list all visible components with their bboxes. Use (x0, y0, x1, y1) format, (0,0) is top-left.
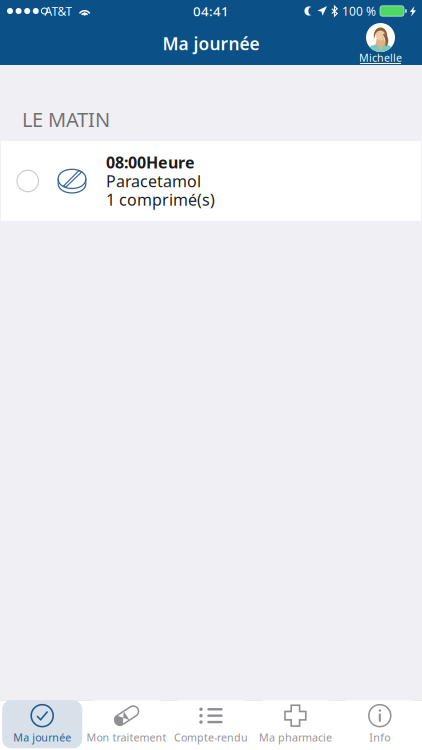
staticText: Ma pharmacie (259, 730, 332, 744)
staticText: Mon traitement (87, 730, 167, 744)
staticText: 08:00Heure (106, 152, 195, 173)
staticText: Compte-rendu (174, 730, 248, 744)
staticText: Ma journée (13, 730, 71, 744)
button[interactable]: Ma journée (0, 700, 84, 750)
button[interactable]: Mon traitement (84, 700, 169, 750)
staticText: Paracetamol (106, 170, 201, 192)
staticText: 100 % (342, 3, 376, 19)
staticText: 04:41 (193, 2, 229, 20)
staticText: AT&T (44, 3, 72, 19)
button[interactable]: Ma pharmacie (253, 700, 338, 750)
button[interactable]: Compte-rendu (169, 700, 253, 750)
button[interactable]: Michelle (360, 23, 422, 64)
staticText: Ma journée (162, 32, 259, 55)
staticText: Info (369, 730, 390, 744)
staticText: Michelle (359, 50, 402, 65)
staticText: LE MATIN (22, 106, 110, 133)
button[interactable]: Info (338, 700, 422, 750)
staticText: 1 comprimé(s) (106, 189, 215, 210)
